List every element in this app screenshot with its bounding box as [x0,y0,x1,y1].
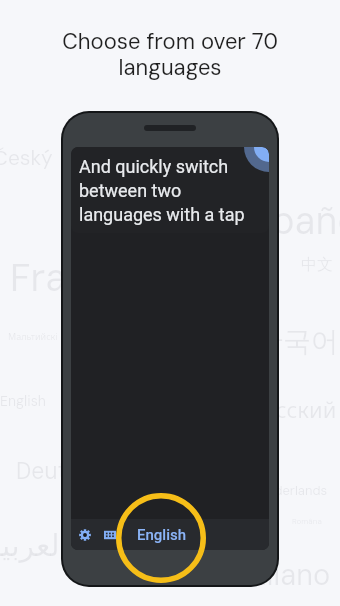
button[interactable]: English [132,521,192,549]
staticText: Deutsch [16,456,106,486]
staticText: Español [230,196,340,245]
staticText: Český [0,144,53,171]
staticText: Français [10,253,160,302]
button[interactable]: Keyboard [102,527,118,543]
staticText: Choose from over 70 languages [54,27,286,82]
staticText: 中文 [301,255,333,275]
staticText: Русский [252,394,337,424]
button[interactable]: Settings [77,527,93,543]
staticText: Nederlands [258,482,328,499]
staticText: English [0,392,46,410]
staticText: Româna [292,516,322,526]
staticText: 한국어 [255,324,339,359]
staticText: And quickly switch between two languages… [79,156,251,225]
staticText: Italiano [232,556,331,594]
staticText: Мальтийскі [8,330,58,342]
staticText: العربية [0,528,68,563]
staticText: English [137,526,187,544]
